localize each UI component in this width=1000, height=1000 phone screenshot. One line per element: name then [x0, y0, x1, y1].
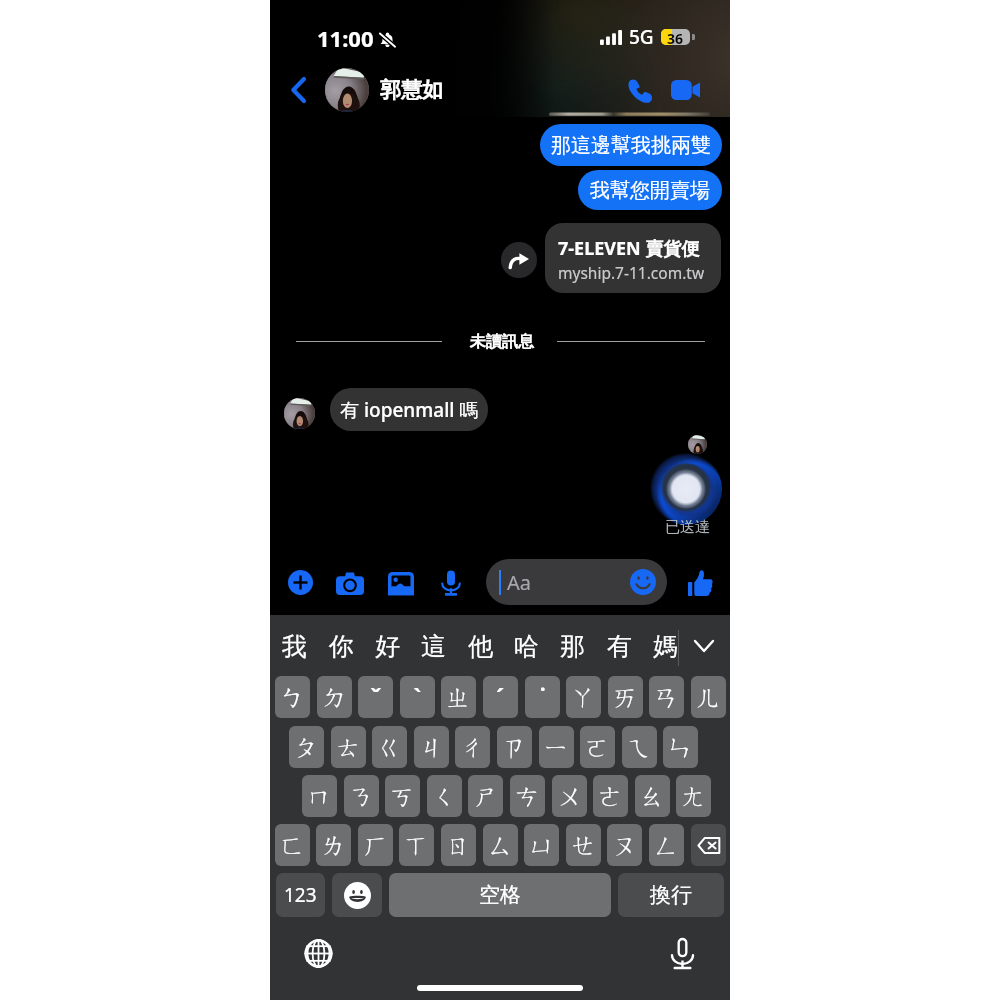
staticText: ㄍ: [377, 732, 403, 763]
button[interactable]: ㄆ: [289, 726, 324, 768]
button[interactable]: ㄓ: [441, 676, 476, 718]
button[interactable]: ˇ: [358, 676, 393, 718]
staticText: ㄞ: [613, 682, 639, 713]
staticText: ㄑ: [432, 781, 458, 812]
button[interactable]: 換行: [618, 873, 724, 917]
button[interactable]: ㄥ: [649, 824, 684, 866]
staticText: 已送達: [665, 518, 710, 537]
button[interactable]: ㄊ: [331, 726, 366, 768]
button[interactable]: ˙: [525, 676, 560, 718]
staticText: 那這邊幫我挑兩雙: [551, 133, 711, 158]
button[interactable]: ㄘ: [510, 775, 545, 817]
button[interactable]: Voice: [435, 564, 467, 602]
button[interactable]: ㄧ: [539, 726, 574, 768]
button[interactable]: ㄤ: [676, 775, 711, 817]
button[interactable]: ㄙ: [483, 824, 518, 866]
button[interactable]: Add: [282, 564, 319, 601]
staticText: ㄧ: [544, 732, 570, 763]
button[interactable]: Video call: [661, 68, 709, 112]
button[interactable]: ㄌ: [316, 824, 351, 866]
button[interactable]: ㄕ: [468, 775, 503, 817]
button[interactable]: Camera: [330, 566, 370, 601]
button[interactable]: ㄗ: [497, 726, 532, 768]
staticText: ㄈ: [280, 830, 306, 861]
button[interactable]: ㄦ: [691, 676, 726, 718]
button[interactable]: Emoji: [332, 873, 382, 917]
staticText: ㄊ: [336, 732, 362, 763]
staticText: ㄤ: [681, 781, 707, 812]
button[interactable]: ㄐ: [414, 726, 449, 768]
button[interactable]: ㄠ: [635, 775, 670, 817]
button[interactable]: ㄣ: [663, 726, 698, 768]
button[interactable]: 哈: [503, 621, 549, 671]
button[interactable]: ㄞ: [608, 676, 643, 718]
button[interactable]: ㄎ: [385, 775, 420, 817]
button[interactable]: ㄜ: [593, 775, 628, 817]
button[interactable]: ㄈ: [275, 824, 310, 866]
button[interactable]: ㄩ: [524, 824, 559, 866]
button[interactable]: 7-ELEVEN 賣貨便: [545, 223, 721, 293]
staticText: ㄓ: [446, 682, 472, 713]
button[interactable]: 那: [549, 621, 595, 671]
button[interactable]: ㄢ: [649, 676, 684, 718]
button[interactable]: Call: [618, 68, 662, 112]
staticText: ㄚ: [571, 682, 597, 713]
button[interactable]: ㄛ: [580, 726, 615, 768]
button[interactable]: 123: [276, 873, 325, 917]
button[interactable]: ㄋ: [344, 775, 379, 817]
button[interactable]: ㄍ: [372, 726, 407, 768]
staticText: 我: [282, 631, 307, 662]
staticText: myship.7-11.com.tw: [558, 262, 705, 283]
button[interactable]: Gallery: [382, 566, 420, 601]
button[interactable]: 我: [271, 621, 317, 671]
staticText: ㄅ: [280, 682, 306, 713]
button[interactable]: Forward: [501, 242, 537, 278]
button[interactable]: ㄏ: [358, 824, 393, 866]
button[interactable]: 那這邊幫我挑兩雙: [540, 124, 722, 166]
button[interactable]: ㄑ: [427, 775, 462, 817]
staticText: ㄔ: [460, 732, 486, 763]
staticText: ㄛ: [585, 732, 611, 763]
staticText: ˊ: [496, 680, 505, 714]
staticText: ㄣ: [668, 732, 694, 763]
button[interactable]: ㄨ: [552, 775, 587, 817]
button[interactable]: 郭慧如: [325, 65, 443, 115]
button[interactable]: Aa: [486, 559, 667, 605]
button[interactable]: ㄚ: [566, 676, 601, 718]
button[interactable]: 有: [596, 621, 642, 671]
button[interactable]: 這: [410, 621, 456, 671]
button[interactable]: 他: [457, 621, 503, 671]
button[interactable]: Back: [278, 68, 318, 112]
button[interactable]: ㄡ: [607, 824, 642, 866]
button[interactable]: 我幫您開賣場: [578, 170, 722, 210]
button[interactable]: 有 iopenmall 嗎: [330, 388, 488, 431]
button[interactable]: ㄉ: [317, 676, 352, 718]
staticText: ㄕ: [473, 781, 499, 812]
button[interactable]: Dictate: [660, 928, 704, 978]
button[interactable]: ㄅ: [275, 676, 310, 718]
button[interactable]: Backspace: [691, 824, 726, 866]
button[interactable]: 你: [318, 621, 364, 671]
button[interactable]: 好: [364, 621, 410, 671]
button[interactable]: Hide keyboard: [682, 624, 726, 668]
staticText: 36: [667, 29, 684, 45]
button[interactable]: Change keyboard: [293, 928, 344, 979]
button[interactable]: ㄒ: [399, 824, 434, 866]
staticText: ㄏ: [363, 830, 389, 861]
button[interactable]: ㄇ: [302, 775, 337, 817]
button[interactable]: ㄝ: [566, 824, 601, 866]
button[interactable]: 空格: [389, 873, 611, 917]
staticText: ㄜ: [598, 781, 624, 812]
staticText: ㄎ: [390, 781, 416, 812]
button[interactable]: 媽: [642, 621, 688, 671]
button[interactable]: ˊ: [483, 676, 518, 718]
button[interactable]: ㄖ: [441, 824, 476, 866]
button[interactable]: Like: [682, 563, 719, 602]
staticText: ㄝ: [571, 830, 597, 861]
button[interactable]: ˋ: [400, 676, 435, 718]
staticText: ㄐ: [419, 732, 445, 763]
button[interactable]: ㄔ: [455, 726, 490, 768]
button[interactable]: ㄟ: [622, 726, 657, 768]
staticText: ㄩ: [529, 830, 555, 861]
staticText: 未讀訊息: [470, 332, 534, 352]
